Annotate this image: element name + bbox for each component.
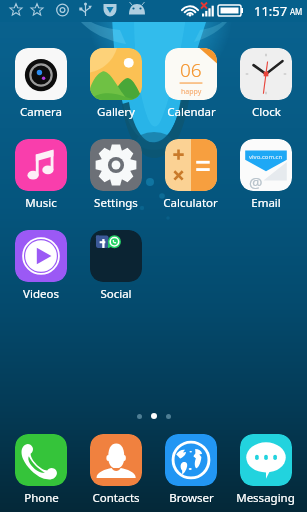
button[interactable]: vivo.com.cn bbox=[239, 139, 293, 211]
staticText: Camera bbox=[20, 104, 62, 120]
staticText: Gallery bbox=[97, 104, 135, 120]
button[interactable]: Music bbox=[14, 139, 68, 211]
staticText: Messaging bbox=[236, 490, 295, 506]
button[interactable]: Messaging bbox=[235, 434, 296, 506]
staticText: 06 bbox=[180, 57, 202, 83]
button[interactable]: Browser bbox=[164, 434, 218, 506]
staticText: Clock bbox=[252, 104, 281, 120]
button[interactable]: Clock bbox=[239, 48, 293, 120]
staticText: happy bbox=[181, 87, 202, 97]
staticText: @ bbox=[249, 172, 263, 191]
button[interactable]: 06 bbox=[164, 48, 218, 120]
staticText: Contacts bbox=[92, 490, 140, 506]
staticText: Calendar bbox=[167, 104, 216, 120]
staticText: Email bbox=[251, 195, 281, 211]
button[interactable]: Gallery bbox=[89, 48, 143, 120]
button[interactable]: Phone bbox=[14, 434, 68, 506]
staticText: Calculator bbox=[163, 195, 218, 211]
button[interactable]: Calculator bbox=[162, 139, 219, 211]
button[interactable]: Settings bbox=[89, 139, 143, 211]
staticText: Browser bbox=[169, 490, 214, 506]
staticText: 11:57 bbox=[254, 2, 288, 20]
button[interactable]: Contacts bbox=[89, 434, 143, 506]
staticText: Music bbox=[25, 195, 57, 211]
button[interactable]: Social bbox=[89, 230, 143, 302]
button[interactable]: Camera bbox=[14, 48, 68, 120]
staticText: Settings bbox=[94, 195, 138, 211]
button[interactable]: Videos bbox=[14, 230, 68, 302]
staticText: Videos bbox=[23, 286, 59, 302]
staticText: AM bbox=[290, 6, 303, 17]
staticText: Social bbox=[100, 286, 132, 302]
staticText: vivo.com.cn bbox=[249, 153, 283, 161]
staticText: Phone bbox=[24, 490, 59, 506]
